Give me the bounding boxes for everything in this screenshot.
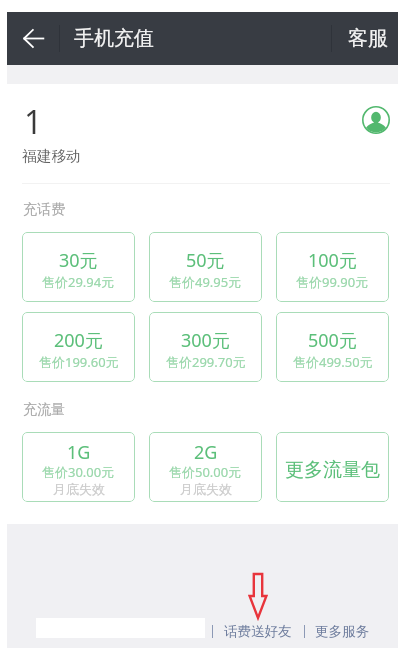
- staticText: 500元: [308, 328, 357, 353]
- button[interactable]: 200元: [22, 312, 135, 382]
- staticText: 客服: [348, 26, 388, 51]
- button[interactable]: 1G: [22, 432, 135, 502]
- button[interactable]: 30元: [22, 232, 135, 302]
- button[interactable]: 500元: [276, 312, 389, 382]
- staticText: 手机充值: [74, 26, 154, 51]
- button[interactable]: 客服: [338, 12, 398, 65]
- button[interactable]: Select contact: [360, 104, 392, 136]
- staticText: 月底失效: [180, 481, 232, 497]
- staticText: 更多流量包: [285, 458, 380, 482]
- button[interactable]: 100元: [276, 232, 389, 302]
- staticText: 充流量: [23, 401, 65, 419]
- button[interactable]: 更多服务: [315, 623, 369, 640]
- staticText: 售价29.94元: [42, 273, 115, 291]
- staticText: 1: [24, 100, 43, 144]
- staticText: 30元: [59, 248, 98, 273]
- staticText: 售价299.70元: [166, 353, 246, 371]
- staticText: 售价199.60元: [39, 353, 119, 371]
- staticText: 300元: [181, 328, 230, 353]
- button[interactable]: 话费送好友: [224, 623, 292, 640]
- staticText: 福建移动: [22, 147, 81, 166]
- staticText: 200元: [54, 328, 103, 353]
- staticText: 售价99.90元: [296, 273, 369, 291]
- staticText: 1G: [67, 440, 91, 465]
- staticText: 100元: [308, 248, 357, 273]
- button[interactable]: Back: [7, 12, 59, 65]
- staticText: 售价30.00元: [42, 463, 115, 481]
- staticText: 售价499.50元: [293, 353, 373, 371]
- staticText: 50元: [186, 248, 225, 273]
- staticText: 售价49.95元: [169, 273, 242, 291]
- staticText: 2G: [194, 440, 218, 465]
- button[interactable]: 2G: [149, 432, 262, 502]
- staticText: 月底失效: [53, 481, 105, 497]
- staticText: 充话费: [23, 201, 65, 219]
- button[interactable]: 50元: [149, 232, 262, 302]
- button[interactable]: 300元: [149, 312, 262, 382]
- button[interactable]: 更多流量包: [276, 432, 389, 502]
- staticText: 售价50.00元: [169, 463, 242, 481]
